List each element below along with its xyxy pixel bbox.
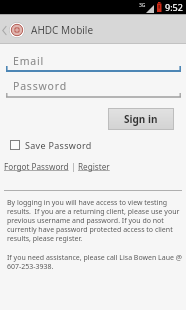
staticText: Password (13, 79, 67, 93)
staticText: 3G (139, 2, 146, 9)
staticText: Sign in (124, 112, 158, 126)
button[interactable]: Save Password (6, 136, 96, 154)
staticText: AHDC Mobile (31, 23, 94, 37)
staticText: Save Password (25, 139, 92, 151)
button[interactable]: AHDC Mobile (0, 16, 186, 44)
button[interactable]: Email (6, 50, 181, 72)
staticText: | (69, 161, 78, 172)
staticText: Email (13, 54, 44, 68)
button[interactable]: Password (6, 75, 181, 97)
staticText: 9:52 (165, 1, 183, 13)
button[interactable]: Sign in (108, 108, 174, 130)
staticText: If you need assistance, please call Lisa… (7, 253, 183, 271)
staticText: By logging in you will have access to vi… (7, 198, 180, 243)
button[interactable]: Forgot Password (4, 161, 69, 172)
button[interactable]: Register (78, 161, 110, 172)
